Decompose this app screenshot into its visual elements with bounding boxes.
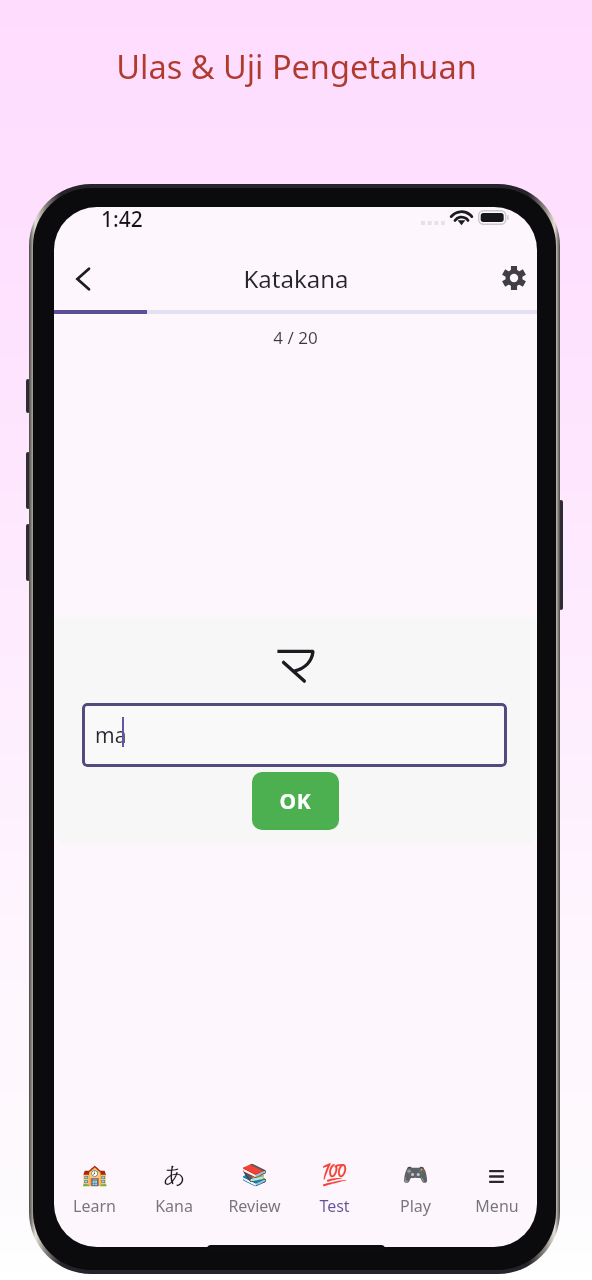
staticText: 🏫 [81,1163,108,1188]
staticText: 1:42 [101,207,143,234]
staticText: 🎮 [402,1163,429,1188]
button[interactable]: ma [82,703,507,767]
button[interactable]: 🏫 [54,1155,134,1227]
button[interactable]: Settings [490,254,537,302]
button[interactable]: Back [59,255,107,303]
staticText: Learn [73,1195,116,1217]
staticText: Menu [475,1195,519,1217]
staticText: Katakana [243,262,349,295]
button[interactable]: Menu [456,1155,537,1227]
staticText: ma [95,721,127,750]
staticText: あ [163,1161,186,1189]
staticText: 📚 [241,1163,268,1188]
button[interactable]: 📚 [214,1155,294,1227]
button[interactable]: 🎮 [375,1155,456,1227]
button[interactable]: OK [252,772,339,830]
staticText: Ulas & Uji Pengetahuan [116,44,477,88]
staticText: OK [279,787,312,816]
staticText: Review [228,1195,281,1217]
staticText: 4 / 20 [273,326,318,349]
staticText: 💯 [321,1163,348,1188]
staticText: Play [400,1195,431,1217]
staticText: Test [319,1195,350,1217]
staticText: Kana [155,1195,193,1217]
button[interactable]: 💯 [294,1155,375,1227]
button[interactable]: あ [134,1155,214,1227]
